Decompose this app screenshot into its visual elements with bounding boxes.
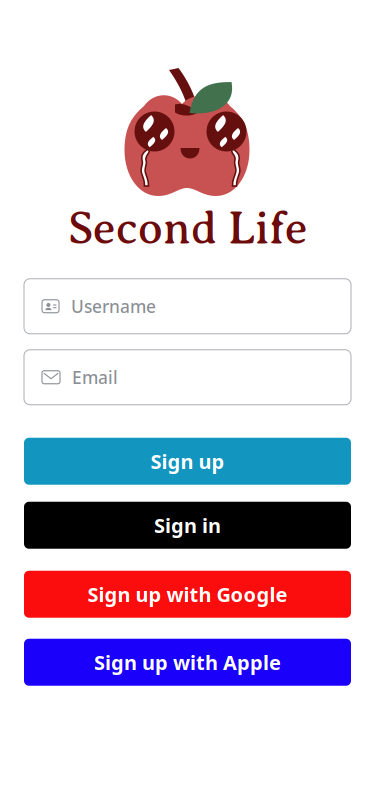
staticText: Username [71, 295, 156, 318]
button[interactable]: Username [24, 279, 351, 334]
button[interactable]: Sign up with Google [24, 571, 351, 618]
button[interactable]: Sign up with Apple [24, 639, 351, 686]
button[interactable]: Sign up [24, 438, 351, 485]
button[interactable]: Sign in [24, 502, 351, 549]
staticText: Email [72, 366, 118, 389]
staticText: Sign up [150, 448, 224, 475]
staticText: Sign up with Apple [94, 649, 281, 676]
button[interactable]: Email [24, 350, 351, 405]
staticText: Sign up with Google [87, 581, 287, 608]
staticText: Sign in [154, 512, 221, 539]
staticText: Second Life [68, 203, 307, 254]
